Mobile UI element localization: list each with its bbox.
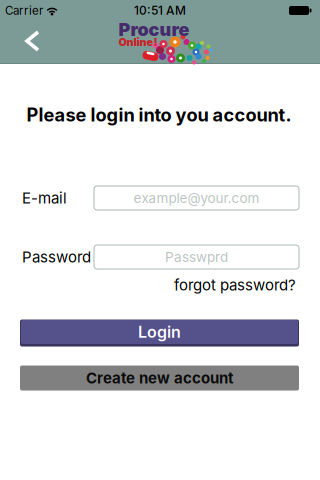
button[interactable]: forgot password? bbox=[146, 276, 296, 294]
staticText: Password bbox=[22, 248, 91, 266]
staticText: Online! bbox=[118, 35, 157, 49]
staticText: E-mail bbox=[22, 189, 67, 207]
staticText: example@your.com bbox=[133, 190, 259, 206]
button[interactable]: Back bbox=[8, 19, 52, 63]
staticText: Please login into you account. bbox=[26, 104, 291, 126]
staticText: Login bbox=[138, 322, 181, 342]
button[interactable]: Login bbox=[20, 319, 299, 346]
staticText: Passwprd bbox=[165, 249, 228, 265]
staticText: 10:51 AM bbox=[134, 3, 186, 18]
staticText: Create new account bbox=[86, 369, 233, 387]
staticText: Procure bbox=[118, 19, 189, 40]
button[interactable]: Create new account bbox=[20, 365, 299, 390]
staticText: Carrier bbox=[5, 3, 43, 17]
staticText: forgot password? bbox=[174, 276, 296, 294]
